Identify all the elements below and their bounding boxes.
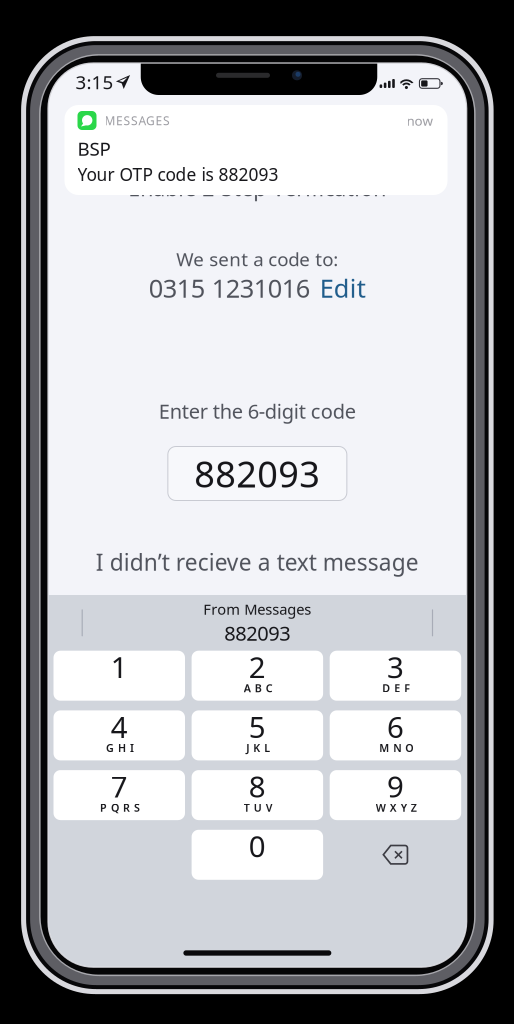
- staticText: Edit: [320, 271, 366, 305]
- staticText: 9: [387, 767, 404, 806]
- staticText: 1: [111, 647, 128, 686]
- staticText: 0315 1231016: [149, 271, 310, 305]
- button[interactable]: 4: [53, 710, 185, 760]
- staticText: MNO: [379, 741, 413, 755]
- staticText: Enable 2-Step Verification: [128, 174, 386, 202]
- button[interactable]: MESSAGES: [64, 105, 447, 195]
- staticText: I didn’t recieve a text message: [96, 547, 419, 577]
- button[interactable]: 1: [53, 651, 185, 701]
- staticText: 882093: [194, 450, 320, 497]
- staticText: ABC: [244, 681, 273, 695]
- button[interactable]: 2: [192, 651, 323, 701]
- staticText: now: [406, 112, 432, 129]
- button[interactable]: I didn’t recieve a text message: [96, 547, 419, 577]
- button[interactable]: 9: [330, 770, 461, 820]
- staticText: JKL: [246, 741, 270, 755]
- staticText: Your OTP code is 882093: [77, 163, 278, 186]
- button[interactable]: From Messages: [152, 600, 362, 646]
- staticText: 8: [249, 767, 266, 806]
- button[interactable]: 8: [192, 770, 323, 820]
- button[interactable]: 7: [53, 770, 185, 820]
- staticText: MESSAGES: [104, 112, 170, 128]
- staticText: 6: [387, 707, 404, 746]
- staticText: 0: [249, 826, 266, 865]
- staticText: 882093: [224, 620, 290, 646]
- staticText: We sent a code to:: [176, 247, 338, 271]
- staticText: TUV: [244, 800, 273, 815]
- staticText: BSP: [77, 136, 110, 161]
- staticText: 3: [387, 647, 404, 686]
- button[interactable]: Edit: [320, 271, 366, 305]
- button[interactable]: 3: [330, 651, 461, 701]
- staticText: Enter the 6-digit code: [159, 398, 356, 424]
- button[interactable]: 5: [192, 710, 323, 760]
- staticText: 4: [111, 707, 128, 746]
- staticText: WXYZ: [376, 800, 417, 815]
- staticText: 2: [249, 647, 266, 686]
- button[interactable]: 6: [330, 710, 461, 760]
- staticText: DEF: [382, 681, 410, 695]
- staticText: GHI: [106, 741, 134, 755]
- staticText: 5: [249, 707, 266, 746]
- staticText: 3:15: [75, 70, 113, 94]
- staticText: From Messages: [203, 599, 311, 619]
- staticText: PQRS: [100, 800, 140, 815]
- button[interactable]: Delete: [330, 830, 461, 880]
- staticText: 7: [111, 767, 128, 806]
- button[interactable]: 0: [192, 830, 323, 880]
